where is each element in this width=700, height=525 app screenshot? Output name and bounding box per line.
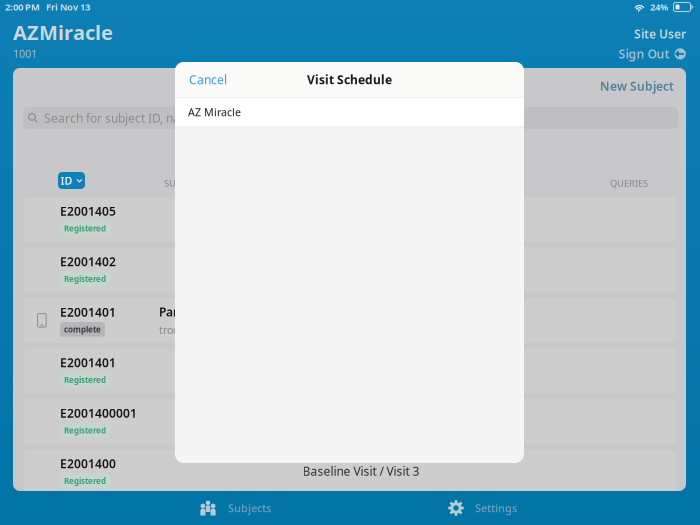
button[interactable]: E2001405 <box>24 197 676 242</box>
button[interactable]: E2001401 <box>24 298 676 343</box>
button[interactable]: Sign Out <box>618 46 686 62</box>
staticText: Subjects <box>228 501 271 515</box>
button[interactable]: ID <box>58 172 85 189</box>
staticText: Registered <box>64 223 106 234</box>
staticText: trodden <box>159 323 200 337</box>
staticText: E2001401 <box>60 355 116 371</box>
staticText: ID <box>60 173 72 188</box>
button[interactable]: Cancel <box>189 71 227 87</box>
staticText: AZ Miracle <box>188 105 241 119</box>
staticText: Fri Nov 13 <box>46 1 90 13</box>
button[interactable]: Settings <box>448 500 558 516</box>
button[interactable]: Subjects <box>200 500 310 516</box>
button[interactable]: E2001400001 <box>24 399 676 444</box>
button[interactable]: E2001401 <box>24 348 676 393</box>
staticText: Site User <box>634 26 686 42</box>
staticText: E2001400 <box>60 456 116 472</box>
staticText: E2001401 <box>60 304 116 320</box>
staticText: 2:00 PM <box>5 1 40 13</box>
staticText: Sign Out <box>618 46 669 62</box>
staticText: Search for subject ID, name, or site <box>44 110 239 126</box>
staticText: 24% <box>650 1 668 13</box>
staticText: AZMiracle <box>13 19 113 46</box>
staticText: Cancel <box>189 71 227 87</box>
button[interactable]: E2001402 <box>24 247 676 292</box>
staticText: SUBJECT <box>164 177 201 189</box>
staticText: Participant <box>159 304 223 320</box>
staticText: Registered <box>64 375 106 385</box>
staticText: QUERIES <box>610 177 648 189</box>
staticText: Settings <box>475 501 517 515</box>
button[interactable]: AZ Miracle <box>175 98 524 127</box>
staticText: Registered <box>64 274 106 284</box>
staticText: E2001405 <box>60 203 116 219</box>
staticText: Registered <box>64 425 106 436</box>
staticText: complete <box>64 324 101 335</box>
staticText: Visit Schedule <box>307 71 392 87</box>
button[interactable]: New Subject <box>600 78 674 94</box>
staticText: 1001 <box>13 47 37 61</box>
staticText: E2001400001 <box>60 405 137 421</box>
staticText: Baseline Visit / Visit 3 <box>302 463 419 479</box>
button[interactable]: E2001400 <box>24 449 676 494</box>
staticText: E2001402 <box>60 254 116 270</box>
staticText: Registered <box>64 476 106 486</box>
staticText: New Subject <box>600 78 674 94</box>
